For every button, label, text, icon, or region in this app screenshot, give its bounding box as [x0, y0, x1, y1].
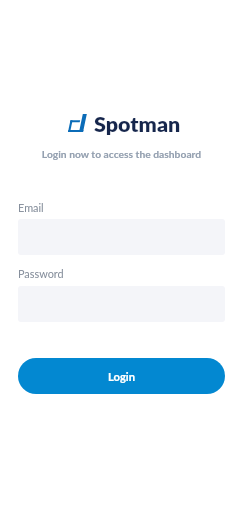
staticText: Password: [18, 267, 64, 280]
staticText: Spotman: [94, 111, 181, 137]
button[interactable]: Login: [18, 358, 225, 394]
staticText: Login now to access the dashboard: [0, 148, 243, 160]
staticText: Email: [18, 201, 44, 214]
staticText: Login: [108, 370, 135, 383]
